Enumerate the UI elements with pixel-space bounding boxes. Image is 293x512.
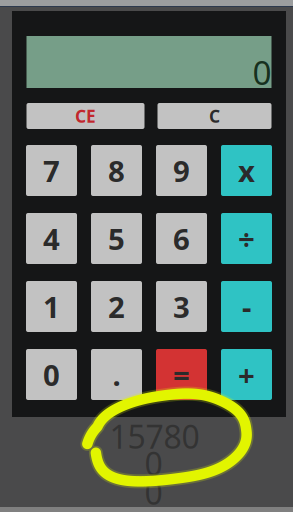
staticText: 8 bbox=[108, 151, 125, 190]
staticText: + bbox=[238, 355, 255, 394]
staticText: 15780 bbox=[109, 415, 199, 457]
button[interactable]: 6 bbox=[156, 213, 207, 264]
button[interactable]: 5 bbox=[91, 213, 142, 264]
staticText: - bbox=[242, 287, 251, 326]
staticText: CE bbox=[75, 104, 96, 127]
staticText: = bbox=[173, 355, 190, 394]
staticText: 4 bbox=[43, 219, 60, 258]
button[interactable]: 9 bbox=[156, 145, 207, 196]
button[interactable]: C bbox=[157, 103, 271, 129]
staticText: 0 bbox=[144, 471, 162, 512]
staticText: 1 bbox=[43, 287, 60, 326]
staticText: 6 bbox=[173, 219, 190, 258]
staticText: x bbox=[238, 151, 255, 190]
button[interactable]: 4 bbox=[26, 213, 77, 264]
button[interactable]: CE bbox=[26, 103, 144, 129]
staticText: 0 bbox=[144, 442, 162, 484]
button[interactable]: 3 bbox=[156, 281, 207, 332]
button[interactable]: 1 bbox=[26, 281, 77, 332]
button[interactable]: . bbox=[91, 349, 142, 400]
staticText: 3 bbox=[173, 287, 190, 326]
staticText: 5 bbox=[108, 219, 125, 258]
button[interactable]: x bbox=[221, 145, 272, 196]
staticText: 2 bbox=[108, 287, 125, 326]
staticText: 0 bbox=[43, 355, 60, 394]
button[interactable]: 8 bbox=[91, 145, 142, 196]
button[interactable]: - bbox=[221, 281, 272, 332]
staticText: 7 bbox=[43, 151, 60, 190]
button[interactable]: = bbox=[156, 349, 207, 400]
button[interactable]: ÷ bbox=[221, 213, 272, 264]
staticText: 0 bbox=[252, 50, 271, 94]
staticText: 9 bbox=[173, 151, 190, 190]
staticText: C bbox=[209, 104, 220, 127]
button[interactable]: + bbox=[221, 349, 272, 400]
button[interactable]: 0 bbox=[26, 349, 77, 400]
staticText: . bbox=[112, 355, 120, 394]
staticText: ÷ bbox=[238, 219, 255, 258]
button[interactable]: 7 bbox=[26, 145, 77, 196]
button[interactable]: 2 bbox=[91, 281, 142, 332]
